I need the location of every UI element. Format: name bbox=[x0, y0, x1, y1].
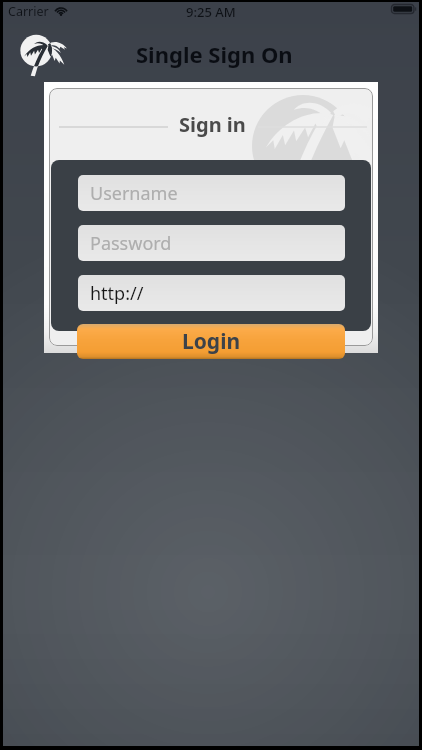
button[interactable]: Username bbox=[78, 175, 345, 211]
staticText: http:// bbox=[90, 281, 144, 306]
staticText: Carrier bbox=[8, 3, 49, 20]
other: App logo bbox=[18, 31, 70, 80]
button[interactable]: Password bbox=[78, 225, 345, 261]
staticText: 9:25 AM bbox=[186, 3, 236, 21]
other: Wi-Fi bbox=[54, 5, 68, 16]
button[interactable]: Login bbox=[77, 324, 345, 359]
button[interactable]: http:// bbox=[78, 275, 345, 311]
staticText: Single Sign On bbox=[136, 39, 293, 69]
staticText: Sign in bbox=[179, 111, 246, 138]
staticText: Login bbox=[182, 327, 241, 356]
staticText: Password bbox=[90, 231, 172, 256]
other: Battery bbox=[391, 4, 417, 14]
staticText: Username bbox=[90, 181, 178, 206]
